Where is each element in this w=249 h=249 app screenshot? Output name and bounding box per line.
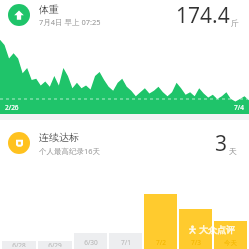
- button[interactable]: 连续达标奖章: [0, 120, 249, 166]
- other: 连续达标奖章: [8, 132, 30, 154]
- staticText: 连续达标: [39, 131, 79, 144]
- button[interactable]: 6/28: [0, 166, 249, 249]
- staticText: 体重: [39, 3, 59, 16]
- staticText: 个人最高纪录16天: [39, 146, 101, 156]
- staticText: 天: [229, 146, 237, 156]
- staticText: 3: [215, 129, 228, 158]
- staticText: 6/28: [12, 241, 26, 247]
- staticText: 6/29: [48, 241, 62, 247]
- staticText: 6/30: [84, 238, 98, 247]
- other: 体重上升: [8, 4, 30, 26]
- button[interactable]: 体重上升: [0, 0, 249, 30]
- staticText: 7/2: [156, 238, 166, 247]
- staticText: 7月4日 早上 07:25: [39, 17, 101, 27]
- staticText: 今天: [224, 239, 237, 247]
- button[interactable]: 2/26: [0, 30, 249, 114]
- staticText: 大众点评: [199, 224, 235, 235]
- staticText: 2/26: [5, 103, 19, 112]
- staticText: 174.4: [176, 1, 230, 30]
- staticText: 7/1: [121, 238, 131, 247]
- staticText: 7/3: [191, 238, 201, 247]
- staticText: 7/4: [234, 103, 244, 112]
- staticText: 斤: [231, 18, 239, 28]
